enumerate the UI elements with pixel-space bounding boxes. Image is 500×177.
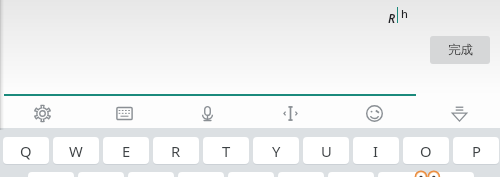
button[interactable]: Settings — [25, 96, 59, 128]
button[interactable]: A — [28, 172, 74, 177]
button[interactable]: Q — [3, 137, 49, 164]
button[interactable]: Hide keyboard — [442, 96, 476, 128]
staticText: U — [321, 141, 332, 161]
staticText: I — [373, 141, 379, 161]
staticText: Y — [272, 141, 281, 161]
button[interactable]: G — [228, 172, 274, 177]
button[interactable]: D — [128, 172, 174, 177]
staticText: P — [472, 141, 481, 161]
staticText: 完成 — [448, 42, 473, 58]
staticText: R — [171, 141, 181, 161]
button[interactable]: R — [153, 137, 199, 164]
button[interactable]: U — [303, 137, 349, 164]
button[interactable]: E — [103, 137, 149, 164]
button[interactable]: 完成 — [430, 36, 490, 64]
staticText: T — [222, 141, 231, 161]
staticText: E — [122, 141, 131, 161]
button[interactable]: Y — [253, 137, 299, 164]
staticText: h — [401, 6, 408, 21]
button[interactable]: J — [328, 172, 374, 177]
staticText: W — [69, 141, 83, 161]
button[interactable]: P — [453, 137, 499, 164]
staticText: Q — [20, 141, 32, 161]
button[interactable]: O — [403, 137, 449, 164]
button[interactable]: W — [53, 137, 99, 164]
button[interactable]: I — [353, 137, 399, 164]
button[interactable]: K — [378, 172, 424, 177]
button[interactable]: L — [428, 172, 474, 177]
button[interactable]: Voice input — [190, 96, 224, 128]
button[interactable]: Emoji — [357, 96, 391, 128]
button[interactable]: F — [178, 172, 224, 177]
button[interactable]: Switch keyboard — [107, 96, 141, 128]
button[interactable]: T — [203, 137, 249, 164]
staticText: O — [420, 141, 432, 161]
staticText: R — [388, 10, 396, 26]
button[interactable]: Move cursor — [273, 96, 307, 128]
button[interactable]: H — [278, 172, 324, 177]
button[interactable]: S — [78, 172, 124, 177]
